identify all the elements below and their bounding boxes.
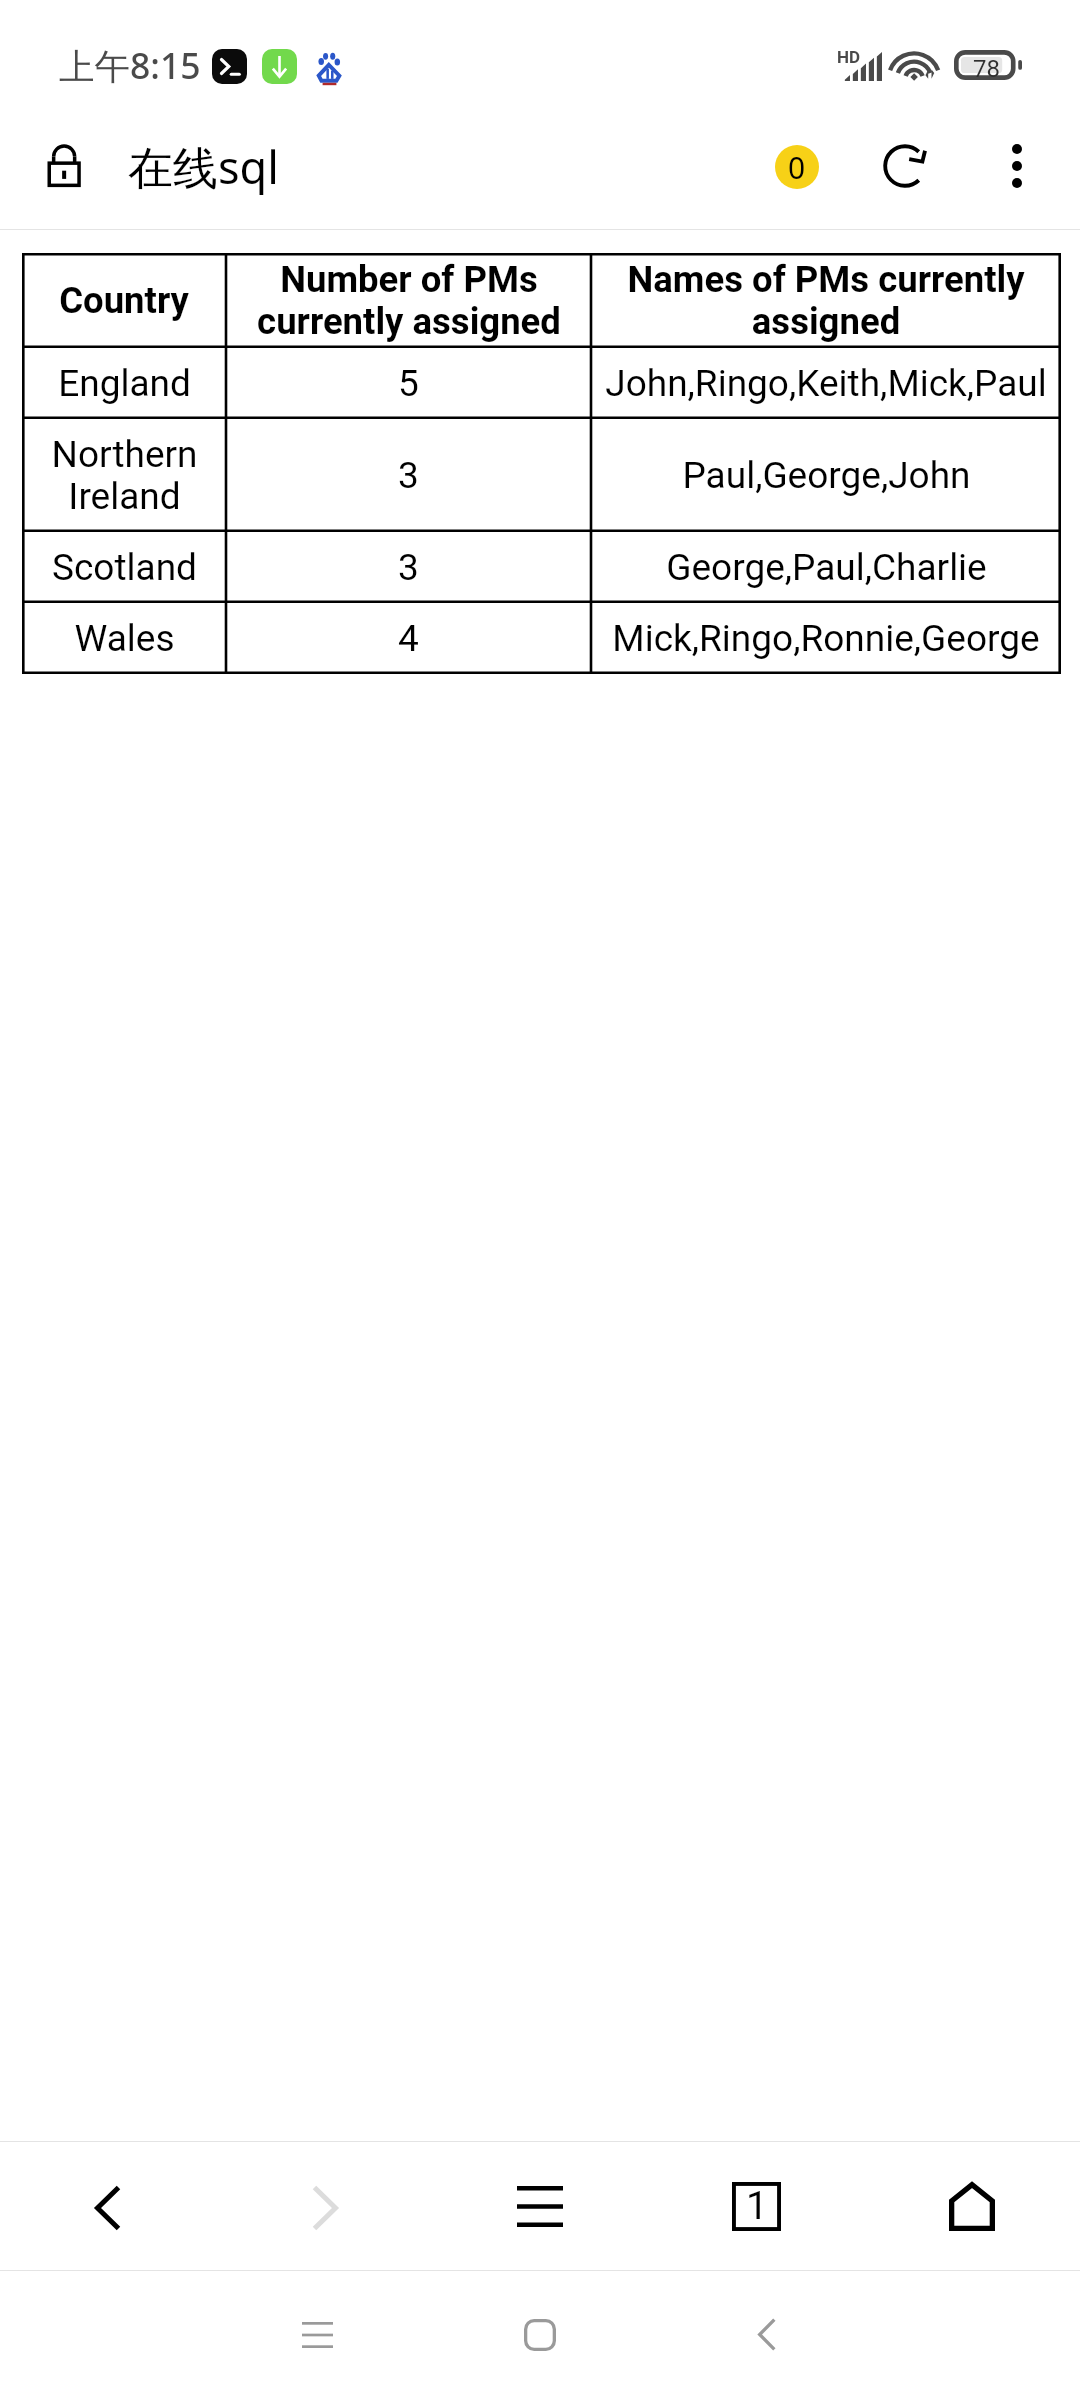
staticText: 上午8:15 [59, 41, 201, 89]
button[interactable]: Tabs [753, 123, 841, 211]
button[interactable]: More options [973, 122, 1061, 210]
staticText: 1 [746, 2183, 768, 2229]
staticText: England [58, 362, 191, 405]
staticText: Scotland [52, 546, 197, 589]
staticText: Paul,George,John [682, 454, 971, 497]
staticText: John,Ringo,Keith,Mick,Paul [605, 362, 1047, 405]
staticText: Names of PMs currently assigned [627, 258, 1025, 343]
button[interactable]: Back [63, 2163, 153, 2253]
staticText: Country [59, 279, 189, 322]
button[interactable]: Refresh [861, 122, 949, 210]
button[interactable]: Home [495, 2290, 585, 2380]
button[interactable]: Tabs [711, 2161, 801, 2251]
staticText: Wales [74, 617, 175, 660]
staticText: 0 [788, 147, 806, 188]
staticText: Number of PMs currently assigned [257, 258, 561, 343]
button[interactable]: Home [927, 2161, 1017, 2251]
staticText: 3 [398, 546, 419, 589]
staticText: 4 [398, 617, 419, 660]
staticText: 在线sql [128, 136, 279, 197]
button[interactable]: Back [722, 2289, 812, 2379]
staticText: 5 [398, 362, 419, 405]
staticText: 3 [398, 454, 419, 497]
button[interactable]: Menu [495, 2161, 585, 2251]
button[interactable]: Site security [35, 136, 93, 194]
button[interactable]: Forward [280, 2163, 370, 2253]
button[interactable]: Recents [272, 2290, 362, 2380]
staticText: 78 [973, 55, 1000, 83]
staticText: Mick,Ringo,Ronnie,George [612, 617, 1040, 660]
staticText: George,Paul,Charlie [666, 546, 987, 589]
staticText: Northern Ireland [51, 433, 198, 518]
staticText: HD [837, 47, 861, 67]
